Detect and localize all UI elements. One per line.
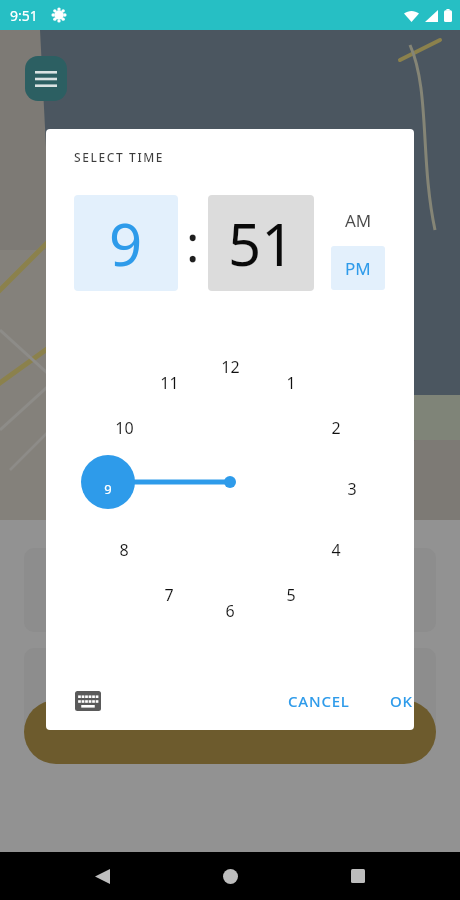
button[interactable]: Menu	[25, 56, 67, 101]
staticText: 51	[228, 204, 295, 283]
button[interactable]: 4	[318, 536, 354, 564]
staticText: 8	[119, 539, 129, 561]
staticText: 1	[286, 372, 296, 394]
button[interactable]: Back	[80, 854, 124, 898]
staticText: :	[186, 209, 200, 277]
staticText: 10	[115, 417, 134, 439]
button[interactable]: OK	[377, 682, 414, 720]
staticText: 3	[347, 478, 357, 500]
button[interactable]: 9	[74, 195, 178, 291]
button[interactable]: CANCEL	[278, 682, 360, 720]
staticText: AM	[345, 209, 372, 232]
staticText: 5	[286, 584, 296, 606]
button[interactable]: PM	[331, 246, 385, 290]
staticText: 9	[109, 204, 143, 283]
button[interactable]: 9	[90, 475, 126, 503]
staticText: 2	[331, 417, 341, 439]
button[interactable]: 5	[273, 581, 309, 609]
button[interactable]: 2	[318, 414, 354, 442]
button[interactable]: 6	[212, 597, 248, 625]
staticText: 6	[225, 600, 235, 622]
button[interactable]: 11	[151, 369, 187, 397]
staticText: OK	[390, 691, 413, 711]
button[interactable]: Home	[208, 854, 252, 898]
button[interactable]: 3	[334, 475, 370, 503]
button[interactable]: Switch to text input	[64, 677, 112, 725]
button[interactable]: 7	[151, 581, 187, 609]
button[interactable]: 12	[212, 353, 248, 381]
button[interactable]: 1	[273, 369, 309, 397]
button[interactable]: Recent apps	[336, 854, 380, 898]
staticText: CANCEL	[288, 691, 350, 711]
staticText: 9	[104, 480, 112, 498]
staticText: 9:51	[10, 6, 38, 25]
staticText: 7	[164, 584, 174, 606]
staticText: 4	[331, 539, 341, 561]
staticText: 11	[160, 372, 179, 394]
button[interactable]: AM	[331, 201, 385, 239]
button[interactable]: 8	[106, 536, 142, 564]
staticText: PM	[345, 257, 371, 280]
staticText: 12	[221, 356, 240, 378]
button[interactable]: 10	[106, 414, 142, 442]
button[interactable]: 51	[208, 195, 314, 291]
staticText: SELECT TIME	[74, 149, 165, 165]
